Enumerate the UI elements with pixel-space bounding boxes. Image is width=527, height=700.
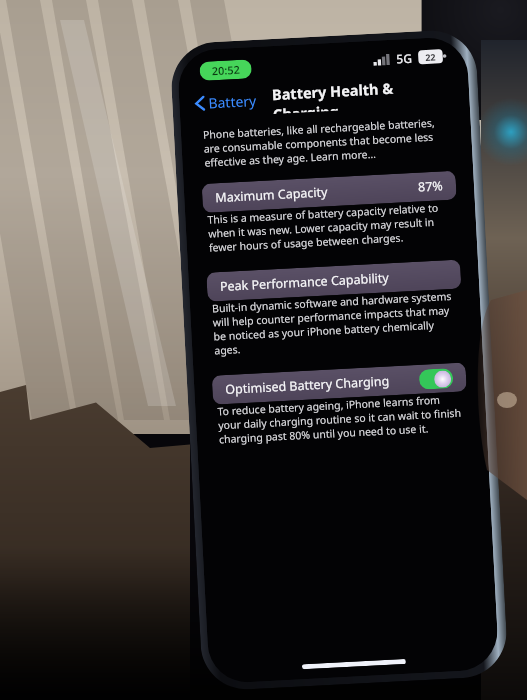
staticText: This is a measure of battery capacity re… [207,200,455,255]
button[interactable]: Optimised Battery Charging toggle, on [419,368,454,390]
button[interactable]: Battery [191,88,261,116]
staticText: Battery [208,91,257,112]
staticText: Built-in dynamic software and hardware s… [212,289,460,357]
button[interactable]: Maximum Capacity [202,171,457,213]
button[interactable]: Peak Performance Capability [206,259,461,302]
staticText: Maximum Capacity [215,183,329,206]
staticText: 20:52 [211,62,241,78]
staticText: To reduce battery ageing, iPhone learns … [217,392,465,446]
staticText: Battery Health & Charging [271,75,456,114]
staticText: 5G [396,50,413,67]
staticText: 87% [418,177,443,196]
button[interactable]: Optimised Battery Charging [212,362,467,405]
staticText: Optimised Battery Charging [225,372,391,398]
staticText: Peak Performance Capability [220,269,389,295]
staticText: 22 [425,50,437,63]
staticText: Phone batteries, like all rechargeable b… [203,115,451,170]
